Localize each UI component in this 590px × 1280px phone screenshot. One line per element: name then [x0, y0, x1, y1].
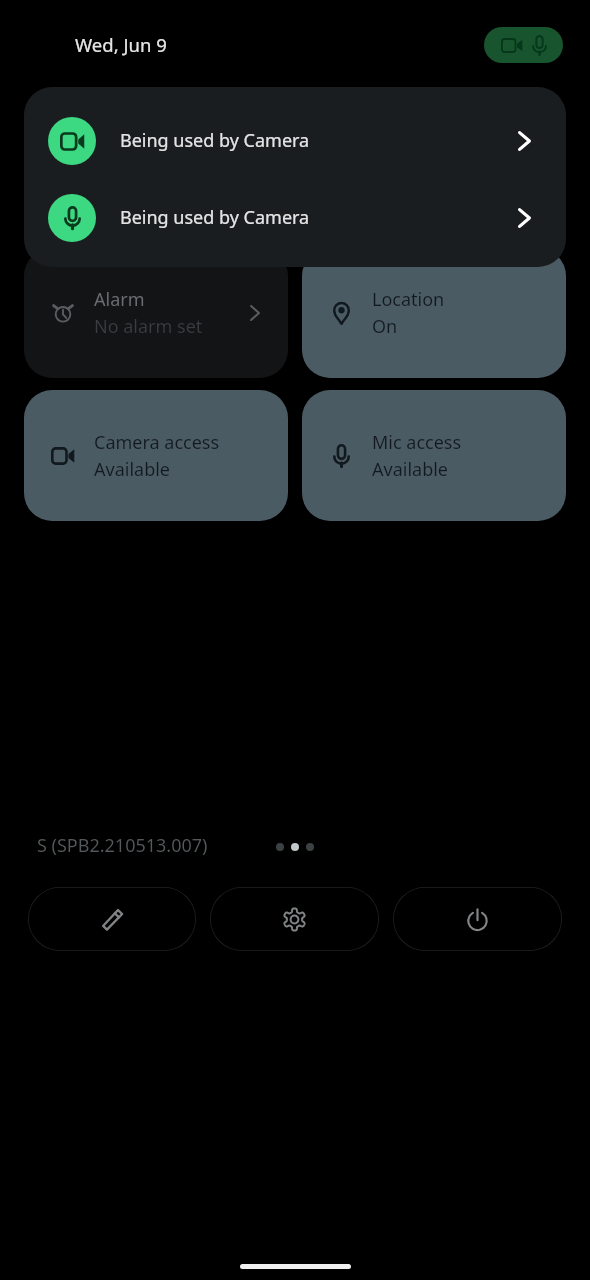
- staticText: No alarm set: [94, 314, 203, 339]
- button[interactable]: Being used by Camera (microphone): [24, 179, 566, 256]
- button[interactable]: Location: [302, 248, 566, 378]
- button[interactable]: Being used by Camera (camera): [24, 102, 566, 179]
- staticText: Mic access: [372, 430, 462, 455]
- button[interactable]: Alarm: [24, 248, 288, 378]
- button[interactable]: Settings: [210, 887, 379, 951]
- staticText: Alarm: [94, 287, 145, 312]
- staticText: Being used by Camera: [120, 128, 310, 153]
- staticText: Available: [372, 457, 448, 482]
- staticText: Location: [372, 287, 445, 312]
- staticText: S (SPB2.210513.007): [37, 833, 208, 858]
- staticText: Camera access: [94, 430, 220, 455]
- button[interactable]: Camera access: [24, 390, 288, 521]
- button[interactable]: Mic access: [302, 390, 566, 521]
- staticText: Wed, Jun 9: [75, 32, 167, 57]
- staticText: Available: [94, 457, 170, 482]
- staticText: On: [372, 314, 398, 339]
- button[interactable]: Edit: [28, 887, 196, 951]
- button[interactable]: Camera and microphone in use: [484, 27, 563, 63]
- staticText: Being used by Camera: [120, 205, 310, 230]
- button[interactable]: Power: [393, 887, 562, 951]
